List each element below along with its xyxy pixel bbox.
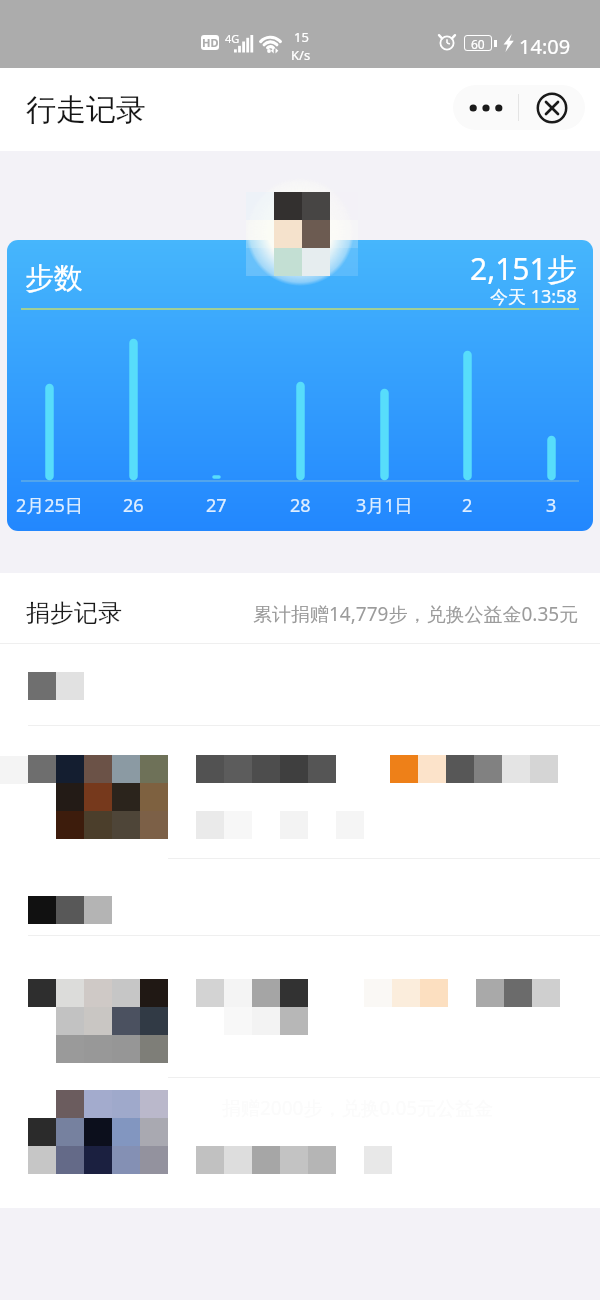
staticText: 步数 <box>25 260 83 297</box>
staticText: 3月1日 <box>356 493 413 518</box>
staticText: 15 <box>294 28 309 46</box>
staticText: 60 <box>471 36 485 50</box>
staticText: 27 <box>206 493 227 518</box>
staticText: 捐步记录 <box>26 598 122 628</box>
staticText: 3 <box>546 493 557 518</box>
staticText: 2,151步 <box>470 248 577 289</box>
staticText: 28 <box>290 493 311 518</box>
staticText: 2月25日 <box>16 493 83 518</box>
staticText: 2 <box>462 493 473 518</box>
button[interactable]: Close <box>519 85 585 130</box>
staticText: 累计捐赠14,779步，兑换公益金0.35元 <box>253 601 579 627</box>
staticText: 今天 13:58 <box>490 284 577 309</box>
staticText: 4G <box>225 31 240 46</box>
staticText: 行走记录 <box>26 91 146 129</box>
staticText: K/s <box>291 46 311 64</box>
staticText: 14:09 <box>519 33 571 60</box>
staticText: HD <box>202 35 219 50</box>
button[interactable]: More options <box>453 85 518 130</box>
staticText: 26 <box>123 493 144 518</box>
